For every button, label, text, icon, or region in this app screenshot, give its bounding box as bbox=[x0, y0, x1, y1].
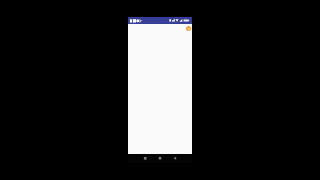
button[interactable]: Home bbox=[149, 154, 171, 163]
button[interactable]: Recent apps bbox=[128, 154, 149, 163]
button[interactable]: Back bbox=[171, 154, 192, 163]
button[interactable]: Add bbox=[186, 26, 191, 31]
